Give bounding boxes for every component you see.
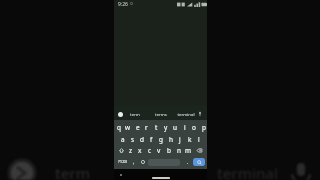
- staticText: i: [184, 123, 186, 132]
- staticText: f: [150, 135, 153, 144]
- staticText: s: [131, 135, 135, 144]
- staticText: j: [179, 135, 181, 144]
- staticText: y: [164, 123, 168, 132]
- staticText: c: [148, 146, 152, 155]
- button[interactable]: Backspace: [193, 144, 206, 156]
- staticText: x: [138, 146, 142, 155]
- staticText: h: [169, 135, 173, 144]
- button[interactable]: j: [175, 133, 184, 145]
- staticText: term: [130, 111, 140, 117]
- staticText: m: [185, 146, 191, 155]
- staticText: ?123: [118, 159, 128, 165]
- button[interactable]: w: [123, 121, 132, 133]
- button[interactable]: q: [114, 121, 123, 133]
- staticText: n: [177, 146, 181, 155]
- button[interactable]: e: [133, 121, 142, 133]
- button[interactable]: f: [147, 133, 156, 145]
- staticText: p: [202, 123, 206, 132]
- staticText: terminal: [217, 163, 278, 180]
- staticText: v: [157, 146, 161, 155]
- button[interactable]: s: [128, 133, 137, 145]
- staticText: terminal: [177, 111, 195, 117]
- staticText: b: [167, 146, 171, 155]
- staticText: a: [121, 135, 125, 144]
- button[interactable]: k: [185, 133, 194, 145]
- button[interactable]: l: [194, 133, 203, 145]
- button[interactable]: p: [199, 121, 208, 133]
- button[interactable]: terms: [150, 109, 172, 119]
- staticText: term: [55, 163, 90, 180]
- staticText: o: [192, 123, 196, 132]
- button[interactable]: r: [142, 121, 151, 133]
- button[interactable]: ,: [129, 156, 139, 168]
- button[interactable]: Google: [118, 112, 123, 117]
- button[interactable]: c: [145, 144, 155, 156]
- staticText: t: [155, 123, 158, 132]
- button[interactable]: term: [124, 109, 146, 119]
- button[interactable]: Search: [193, 158, 205, 166]
- staticText: u: [173, 123, 177, 132]
- staticText: z: [129, 146, 133, 155]
- button[interactable]: x: [135, 144, 145, 156]
- button[interactable]: i: [180, 121, 189, 133]
- button[interactable]: u: [170, 121, 179, 133]
- staticText: ,: [133, 159, 135, 166]
- button[interactable]: v: [154, 144, 164, 156]
- staticText: .: [187, 159, 189, 166]
- staticText: r: [145, 123, 148, 132]
- button[interactable]: b: [164, 144, 174, 156]
- button[interactable]: z: [126, 144, 136, 156]
- button[interactable]: y: [161, 121, 170, 133]
- button[interactable]: Shift: [115, 144, 128, 156]
- staticText: k: [188, 135, 192, 144]
- button[interactable]: t: [152, 121, 161, 133]
- button[interactable]: ?123: [115, 156, 131, 168]
- staticText: q: [117, 123, 121, 132]
- button[interactable]: Voice input: [197, 111, 203, 117]
- button[interactable]: n: [174, 144, 184, 156]
- button[interactable]: d: [137, 133, 146, 145]
- button[interactable]: .: [183, 156, 192, 168]
- button[interactable]: m: [183, 144, 193, 156]
- staticText: terms: [155, 111, 167, 117]
- button[interactable]: a: [118, 133, 127, 145]
- staticText: w: [125, 123, 131, 132]
- button[interactable]: o: [189, 121, 198, 133]
- staticText: 9:26: [118, 1, 128, 8]
- staticText: d: [140, 135, 144, 144]
- button[interactable]: terminal: [175, 109, 197, 119]
- button[interactable]: g: [156, 133, 165, 145]
- staticText: e: [136, 123, 140, 132]
- button[interactable]: Emoji: [138, 156, 147, 168]
- staticText: l: [198, 135, 200, 144]
- staticText: g: [159, 135, 163, 144]
- button[interactable]: h: [166, 133, 175, 145]
